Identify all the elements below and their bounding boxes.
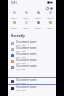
staticText: Document name xyxy=(16,52,37,56)
staticText: Item xyxy=(32,16,44,19)
staticText: 9:41 xyxy=(11,1,17,5)
button[interactable]: Item xyxy=(44,20,56,30)
staticText: size - date xyxy=(16,56,26,58)
button[interactable]: Item xyxy=(20,20,32,30)
button[interactable]: Document name xyxy=(8,46,56,52)
staticText: Item xyxy=(8,16,20,19)
staticText: Item xyxy=(32,26,44,29)
button[interactable]: Item xyxy=(32,20,44,30)
button[interactable]: Document name xyxy=(8,58,56,64)
button[interactable]: Document name xyxy=(8,40,56,46)
staticText: Recently xyxy=(11,34,25,38)
staticText: Document name xyxy=(16,85,37,89)
button[interactable]: Item xyxy=(32,10,44,20)
staticText: Document name xyxy=(16,78,37,82)
staticText: Document name xyxy=(16,58,37,62)
staticText: Item xyxy=(20,26,32,29)
staticText: size - date xyxy=(16,62,26,64)
staticText: Document name xyxy=(16,40,37,44)
staticText: size - date xyxy=(16,44,26,46)
button[interactable]: Item xyxy=(8,10,20,20)
staticText: size - date xyxy=(16,82,26,84)
button[interactable]: Item xyxy=(20,10,32,20)
staticText: Item xyxy=(20,16,32,19)
staticText: size - date xyxy=(16,50,26,52)
button[interactable]: Document name xyxy=(8,78,56,84)
staticText: size - date xyxy=(16,68,26,70)
staticText: Item xyxy=(44,26,56,29)
button[interactable]: Document name xyxy=(8,52,56,58)
button[interactable]: Document name xyxy=(8,85,56,91)
staticText: Document name xyxy=(16,64,37,68)
button[interactable]: Item xyxy=(44,10,56,20)
button[interactable]: Item xyxy=(8,20,20,30)
staticText: Document name xyxy=(16,46,37,50)
staticText: Item xyxy=(44,16,56,19)
button[interactable]: Document name xyxy=(8,64,56,70)
staticText: size - date xyxy=(16,89,26,91)
button[interactable]: Account xyxy=(49,6,53,10)
button[interactable]: Search xyxy=(45,6,49,10)
staticText: Item xyxy=(8,26,20,29)
